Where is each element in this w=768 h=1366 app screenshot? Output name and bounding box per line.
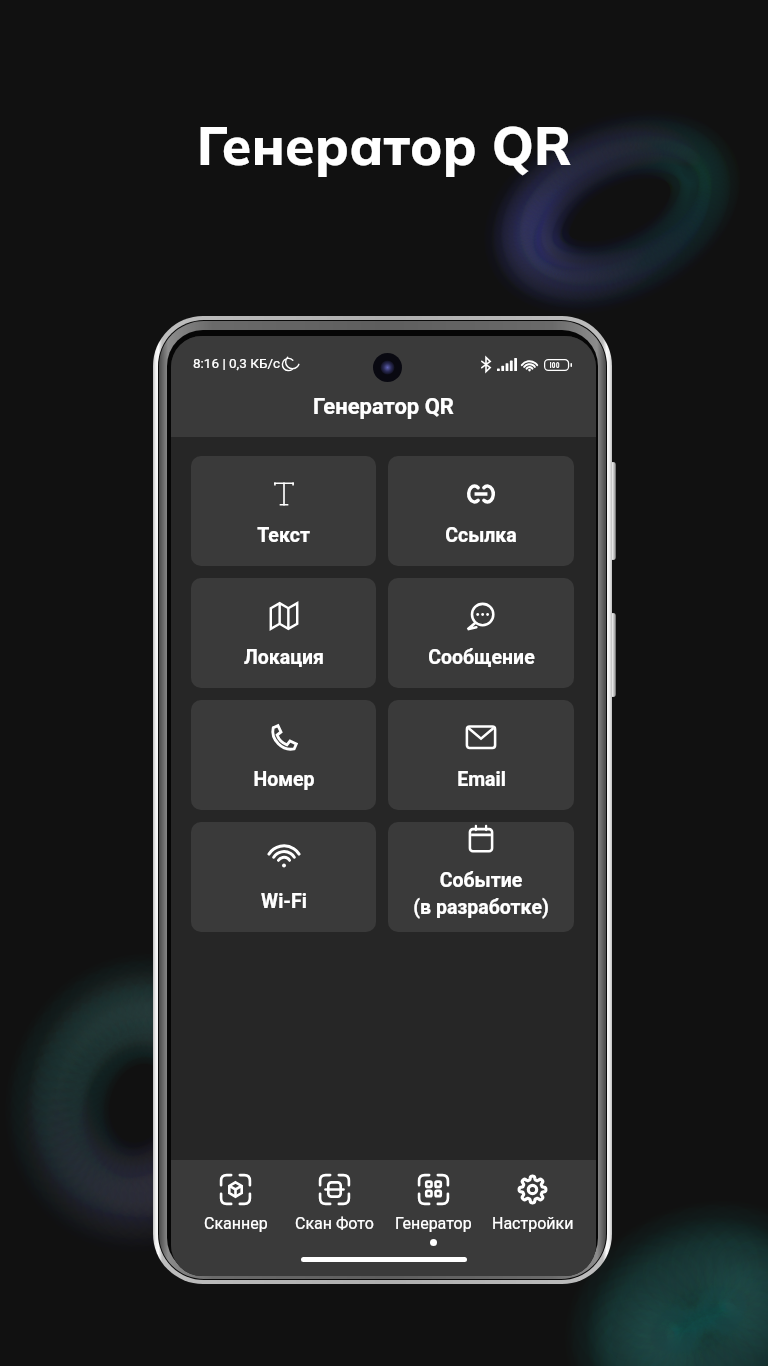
staticText: Сканнер	[204, 1214, 268, 1233]
button[interactable]: Генератор	[384, 1174, 483, 1246]
staticText: Ссылка	[445, 524, 517, 547]
staticText: Email	[457, 768, 506, 791]
staticText: 8:16 | 0,3 КБ/с	[193, 355, 281, 371]
staticText: Wi-Fi	[261, 890, 307, 913]
button[interactable]: Номер	[191, 700, 376, 810]
button[interactable]: Событие (в разработке)	[388, 822, 574, 932]
button[interactable]: Настройки	[483, 1174, 582, 1233]
staticText: Сообщение	[428, 646, 535, 669]
button[interactable]: Сканнер	[186, 1174, 285, 1233]
staticText: Настройки	[492, 1214, 574, 1233]
button[interactable]: Ссылка	[388, 456, 574, 566]
staticText: Генератор	[395, 1214, 472, 1233]
staticText: Текст	[257, 524, 310, 547]
button[interactable]: Текст	[191, 456, 376, 566]
button[interactable]: Сообщение	[388, 578, 574, 688]
button[interactable]: Скан Фото	[285, 1174, 384, 1233]
button[interactable]: Локация	[191, 578, 376, 688]
staticText: Локация	[244, 646, 324, 669]
staticText: Событие (в разработке)	[413, 869, 549, 919]
button[interactable]: Email	[388, 700, 574, 810]
button[interactable]: Wi-Fi	[191, 822, 376, 932]
staticText: Скан Фото	[295, 1214, 374, 1233]
staticText: Номер	[253, 768, 315, 791]
staticText: Генератор QR	[313, 394, 454, 420]
staticText: Генератор QR	[197, 112, 572, 179]
